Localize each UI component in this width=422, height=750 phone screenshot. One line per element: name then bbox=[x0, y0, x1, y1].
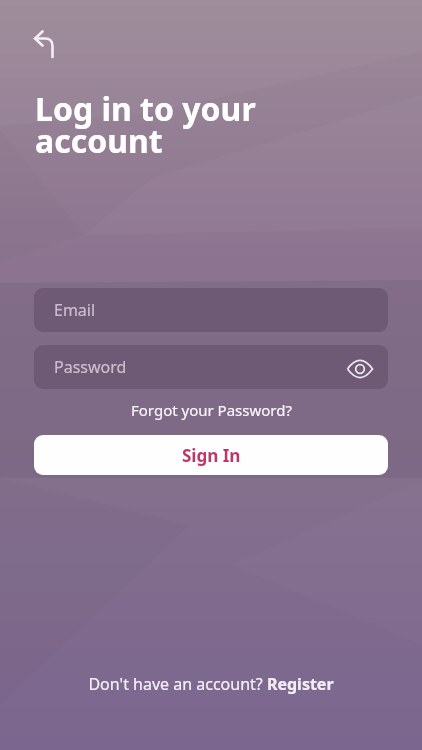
button[interactable]: Email bbox=[34, 288, 388, 332]
button[interactable] bbox=[344, 353, 376, 385]
staticText: Sign In bbox=[182, 444, 241, 467]
staticText: Email bbox=[54, 299, 96, 321]
button[interactable]: Forgot your Password? bbox=[0, 397, 422, 423]
button[interactable]: Don't have an account? Register bbox=[0, 670, 422, 698]
staticText: Don't have an account? Register bbox=[88, 673, 334, 695]
button[interactable]: Sign In bbox=[34, 435, 388, 475]
staticText: Password bbox=[54, 356, 127, 378]
staticText: Log in to your account bbox=[35, 87, 256, 162]
button[interactable] bbox=[26, 24, 66, 64]
staticText: Forgot your Password? bbox=[131, 400, 292, 420]
button[interactable]: Password bbox=[34, 345, 388, 389]
